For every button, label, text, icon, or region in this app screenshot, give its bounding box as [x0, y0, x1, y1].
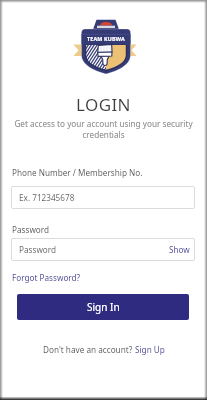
staticText: Sign In	[87, 300, 120, 314]
staticText: Ex. 712345678	[19, 192, 75, 203]
staticText: Get access to your account using your se…	[8, 118, 199, 140]
staticText: Don't have an account?	[43, 344, 135, 355]
other: Team Kubwa logo	[72, 18, 138, 76]
button[interactable]: Forgot Password?	[8, 268, 85, 287]
staticText: Sign Up	[135, 344, 165, 355]
staticText: LOGIN	[76, 93, 131, 116]
staticText: TEAM KUBWA	[87, 35, 125, 42]
staticText: Phone Number / Membership No.	[12, 167, 143, 178]
button[interactable]: Show	[163, 238, 190, 261]
button[interactable]: Sign Up	[135, 341, 165, 358]
staticText: Forgot Password?	[12, 272, 81, 283]
button[interactable]: Sign In	[17, 294, 189, 320]
staticText: Password	[12, 224, 50, 235]
staticText: Password	[19, 244, 163, 255]
staticText: Show	[169, 244, 190, 255]
button[interactable]: Ex. 712345678	[11, 186, 195, 209]
